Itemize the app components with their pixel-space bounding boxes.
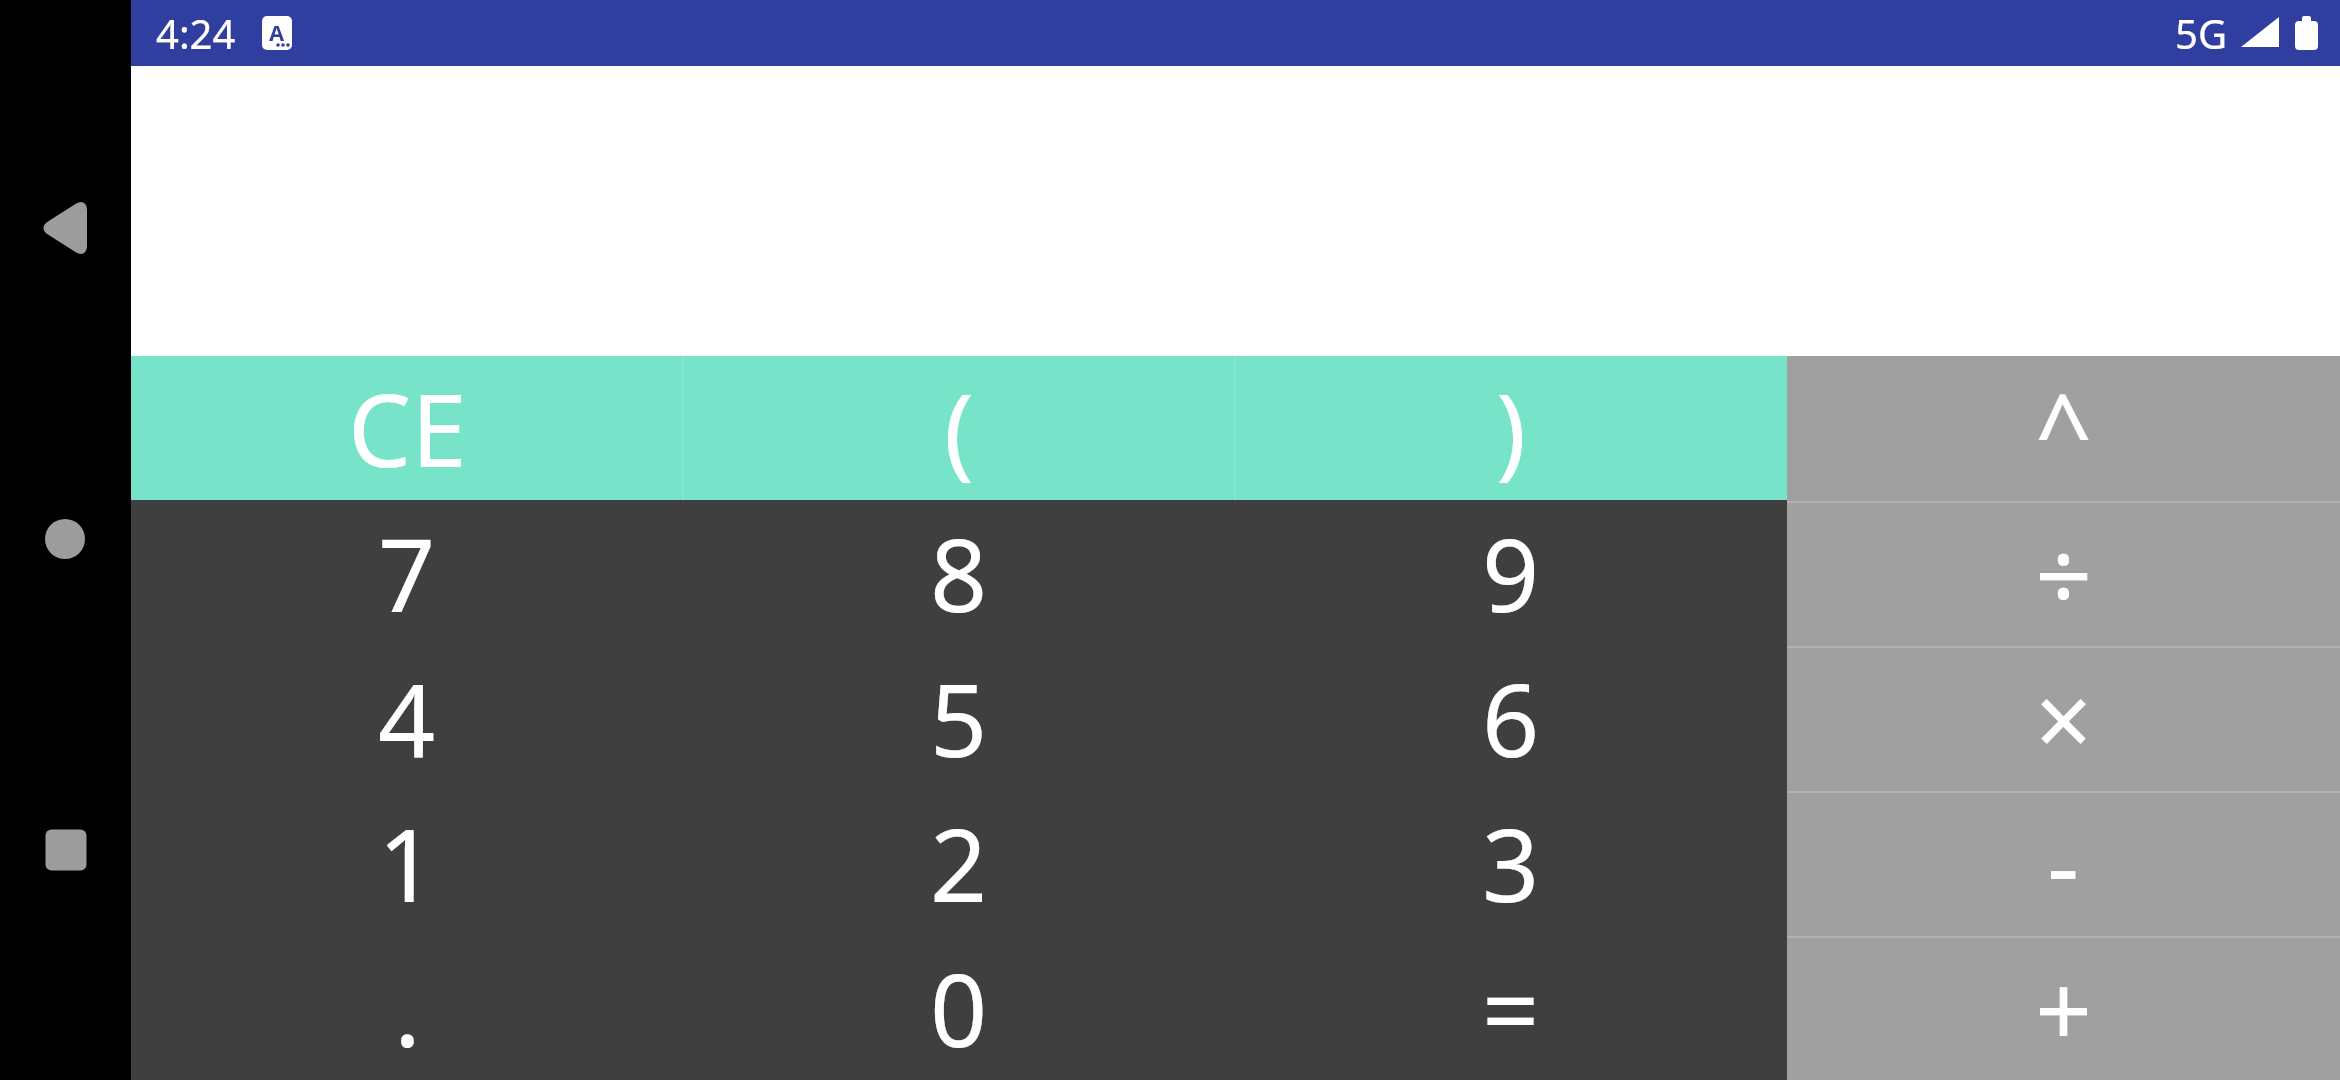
button[interactable]: - [1787, 790, 2340, 935]
staticText: × [2035, 650, 2093, 786]
staticText: 7 [378, 505, 436, 641]
staticText: 8 [930, 505, 988, 641]
staticText: 6 [1482, 650, 1540, 786]
staticText: 2 [930, 795, 988, 931]
button[interactable]: 5 [683, 645, 1235, 790]
staticText: 5G [2175, 6, 2227, 60]
button[interactable]: 0 [683, 935, 1235, 1080]
staticText: = [1482, 940, 1540, 1076]
button[interactable] [24, 188, 104, 268]
staticText: CE [348, 360, 467, 496]
staticText: ( [944, 360, 974, 496]
staticText: 4:24 [156, 6, 236, 60]
button[interactable]: CE [131, 356, 683, 500]
staticText: 4 [378, 650, 436, 786]
button[interactable]: 7 [131, 500, 683, 645]
button[interactable]: 1 [131, 790, 683, 935]
button[interactable]: 9 [1235, 500, 1787, 645]
button[interactable]: 3 [1235, 790, 1787, 935]
button[interactable]: 4 [131, 645, 683, 790]
button[interactable]: 6 [1235, 645, 1787, 790]
button[interactable]: 8 [683, 500, 1235, 645]
staticText: 0 [930, 940, 988, 1076]
button[interactable]: ) [1235, 356, 1787, 500]
staticText: ÷ [2035, 505, 2093, 641]
button[interactable]: × [1787, 645, 2340, 790]
button[interactable]: 2 [683, 790, 1235, 935]
button[interactable]: ÷ [1787, 500, 2340, 645]
staticText: 9 [1482, 505, 1540, 641]
staticText: 5 [930, 650, 988, 786]
button[interactable]: . [131, 935, 683, 1080]
staticText: ^ [2035, 360, 2093, 496]
button[interactable]: + [1787, 935, 2340, 1080]
button[interactable] [25, 499, 105, 579]
staticText: 1 [378, 795, 436, 931]
staticText: 3 [1482, 795, 1540, 931]
staticText: + [2035, 940, 2093, 1076]
button[interactable]: = [1235, 935, 1787, 1080]
button[interactable]: ^ [1787, 356, 2340, 500]
staticText: - [2047, 795, 2080, 931]
button[interactable] [26, 810, 106, 890]
staticText: ) [1496, 360, 1526, 496]
staticText: A [269, 17, 285, 47]
staticText: . [394, 940, 421, 1076]
button[interactable]: ( [683, 356, 1235, 500]
